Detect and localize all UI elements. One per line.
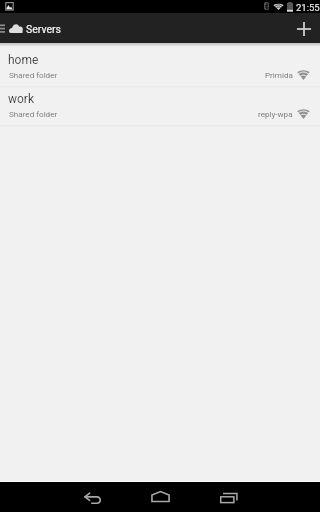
staticText: Shared folder xyxy=(9,70,58,79)
staticText: 21:55 xyxy=(296,2,320,13)
button[interactable]: Back xyxy=(65,482,119,512)
staticText: Servers xyxy=(26,23,62,35)
staticText: reply-wpa xyxy=(258,109,293,118)
button[interactable]: Home xyxy=(133,482,187,512)
button[interactable]: Recent apps xyxy=(202,482,256,512)
staticText: Primida xyxy=(265,70,293,79)
staticText: home xyxy=(8,53,39,67)
button[interactable]: work xyxy=(0,88,320,127)
button[interactable]: home xyxy=(0,49,320,88)
button[interactable]: Add server xyxy=(287,13,320,43)
staticText: Shared folder xyxy=(9,109,58,118)
button[interactable]: Open navigation drawer xyxy=(0,13,7,43)
staticText: work xyxy=(8,92,35,106)
